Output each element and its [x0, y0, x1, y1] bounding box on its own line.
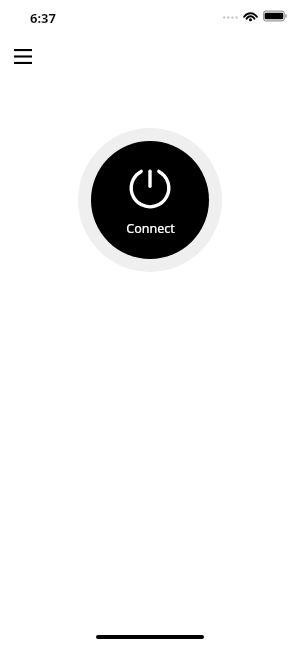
- button[interactable]: Connect: [78, 128, 222, 272]
- button[interactable]: Menu: [6, 39, 40, 73]
- staticText: Connect: [126, 220, 175, 237]
- staticText: 6:37: [30, 9, 56, 27]
